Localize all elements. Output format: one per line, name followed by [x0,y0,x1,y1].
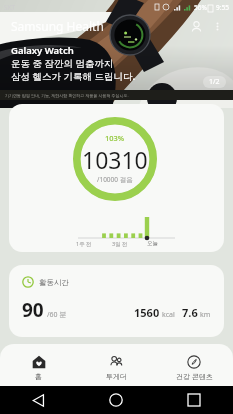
staticText: 건강 콘텐츠 [176,372,213,382]
button[interactable]: 건강 콘텐츠 [155,344,233,382]
staticText: 90 [22,297,44,323]
staticText: /60 분 [47,310,67,320]
staticText: 기기연동 팝업 안내, 기능, 제한사항 확인하고 제품을 사용해 주십시오. [5,93,129,98]
staticText: 운동 중 잠깐의 멈춤까지 [11,57,114,70]
staticText: km [200,310,211,320]
button[interactable]: 103% [9,104,224,252]
staticText: 홈 [35,372,42,381]
staticText: 56% [194,3,207,12]
staticText: Samsung Health [11,18,104,34]
staticText: Galaxy Watch [11,44,74,57]
button[interactable]: Recents [155,386,233,414]
staticText: 10310 [82,144,148,175]
button[interactable]: Home [77,386,155,414]
staticText: 1주 전 [76,240,92,248]
staticText: kcal [162,310,175,320]
button[interactable]: Profile [185,15,207,37]
staticText: 9:55 [216,3,229,12]
staticText: 삼성 헬스가 기록해 드립니다. [11,70,136,83]
staticText: 투게더 [106,372,127,381]
staticText: 103% [105,133,125,143]
staticText: 오늘 [147,240,158,247]
staticText: 1/2 [209,77,220,87]
staticText: 1560 [134,305,160,320]
button[interactable]: 활동시간 [9,265,224,337]
staticText: 활동시간 [39,278,69,287]
button[interactable]: 투게더 [77,344,155,381]
staticText: /10000 걸음 [97,175,133,184]
staticText: 3일 전 [112,240,128,248]
staticText: 7.6 [182,305,198,320]
button[interactable]: Back [0,386,77,414]
button[interactable]: 홈 [0,344,77,381]
